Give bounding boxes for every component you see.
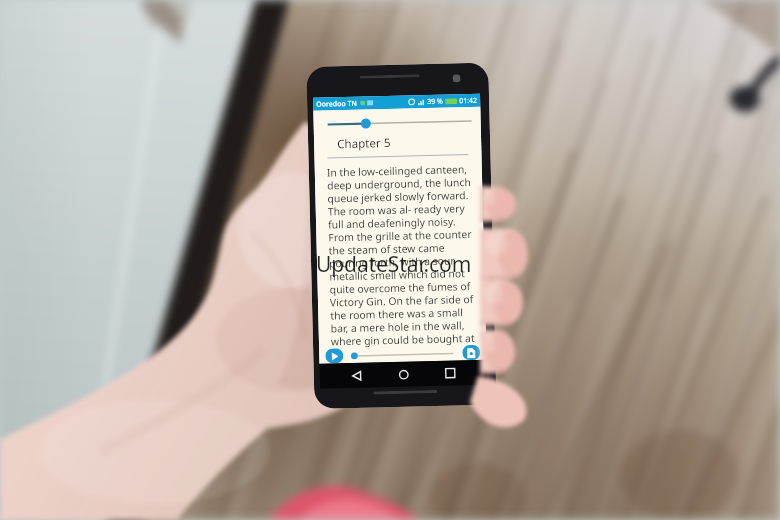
button[interactable]: Recent apps — [439, 362, 461, 384]
staticText: 01:42 — [459, 96, 477, 106]
button[interactable]: Document — [462, 345, 480, 360]
staticText: Chapter 5 — [337, 135, 391, 152]
staticText: Ooredoo TN — [316, 99, 357, 110]
button[interactable]: Home — [392, 363, 414, 385]
staticText: UpdateStar.com — [316, 250, 472, 279]
staticText: 39 % — [427, 97, 443, 107]
button[interactable]: Playback position — [350, 346, 457, 363]
staticText: In the low-ceilinged canteen, deep under… — [327, 162, 478, 348]
button[interactable]: Book position — [313, 115, 481, 131]
button[interactable]: Back — [346, 365, 367, 386]
button[interactable]: Play — [325, 348, 343, 364]
button[interactable]: Chapter 5 — [314, 133, 481, 153]
